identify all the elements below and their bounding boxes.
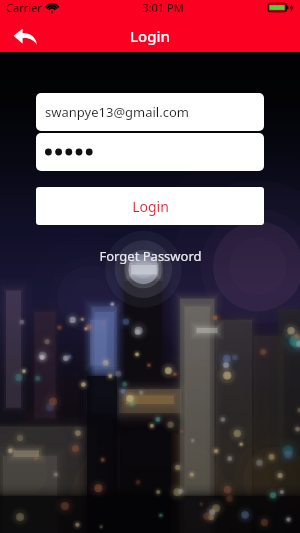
staticText: 3:01 PM <box>142 0 184 15</box>
button[interactable] <box>36 133 264 171</box>
staticText: Forget Password <box>99 247 202 265</box>
button[interactable]: Back <box>8 22 42 50</box>
staticText: swanpye13@gmail.com <box>45 103 189 121</box>
staticText: Login <box>130 26 170 46</box>
button[interactable]: swanpye13@gmail.com <box>36 93 264 131</box>
staticText: Carrier <box>6 0 42 15</box>
button[interactable]: Login <box>36 187 264 225</box>
staticText: Login <box>132 197 169 216</box>
button[interactable]: Forget Password <box>36 246 264 266</box>
